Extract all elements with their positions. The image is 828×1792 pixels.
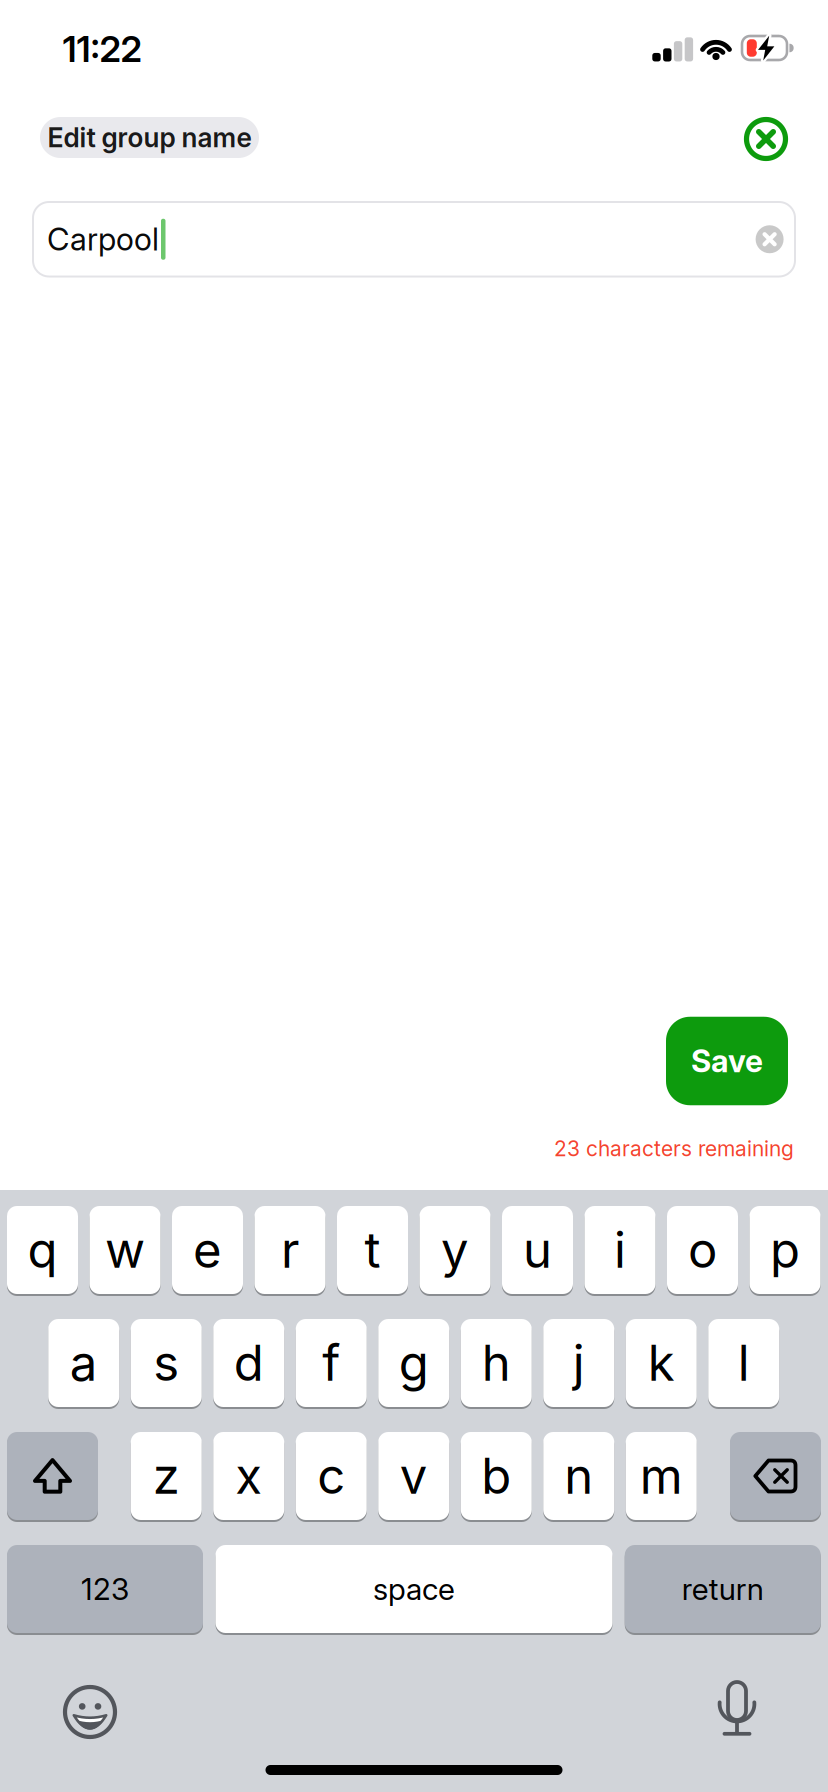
staticText: k	[648, 1333, 675, 1393]
staticText: j	[573, 1333, 585, 1393]
staticText: w	[105, 1220, 145, 1280]
button[interactable]: f	[296, 1319, 367, 1409]
button[interactable]: o	[667, 1206, 738, 1296]
button[interactable]: y	[419, 1206, 490, 1296]
staticText: d	[234, 1333, 264, 1393]
button[interactable]: b	[461, 1432, 532, 1522]
button[interactable]: 123	[7, 1545, 203, 1635]
button[interactable]: v	[378, 1432, 449, 1522]
button[interactable]: h	[461, 1319, 532, 1409]
button[interactable]: x	[213, 1432, 284, 1522]
button[interactable]: space	[215, 1545, 612, 1635]
staticText: m	[640, 1446, 683, 1506]
button[interactable]: u	[502, 1206, 573, 1296]
staticText: p	[770, 1220, 800, 1280]
staticText: f	[322, 1333, 340, 1393]
button[interactable]: w	[89, 1206, 160, 1296]
staticText: x	[235, 1446, 262, 1506]
button[interactable]: Shift	[7, 1432, 98, 1522]
staticText: o	[688, 1220, 717, 1280]
button[interactable]: n	[543, 1432, 614, 1522]
button[interactable]: m	[626, 1432, 697, 1522]
staticText: c	[317, 1446, 345, 1506]
staticText: h	[482, 1333, 511, 1393]
staticText: e	[193, 1220, 222, 1280]
staticText: t	[364, 1220, 380, 1280]
staticText: q	[27, 1220, 57, 1280]
button[interactable]: k	[626, 1319, 697, 1409]
button[interactable]: Group name	[33, 202, 795, 276]
staticText: 123	[81, 1571, 129, 1607]
button[interactable]: a	[48, 1319, 119, 1409]
staticText: return	[682, 1571, 764, 1607]
staticText: l	[738, 1333, 750, 1393]
staticText: a	[70, 1333, 98, 1393]
button[interactable]: return	[625, 1545, 821, 1635]
staticText: y	[441, 1220, 469, 1280]
staticText: b	[481, 1446, 511, 1506]
staticText: u	[523, 1220, 552, 1280]
button[interactable]: l	[708, 1319, 779, 1409]
staticText: g	[399, 1333, 429, 1393]
staticText: Edit group name	[47, 121, 251, 154]
button[interactable]: i	[584, 1206, 655, 1296]
button[interactable]: e	[172, 1206, 243, 1296]
button[interactable]: q	[7, 1206, 78, 1296]
button[interactable]: s	[131, 1319, 202, 1409]
staticText: 11:22	[62, 27, 141, 71]
staticText: 23 characters remaining	[554, 1136, 794, 1161]
button[interactable]: t	[337, 1206, 408, 1296]
staticText: s	[153, 1333, 179, 1393]
button[interactable]: g	[378, 1319, 449, 1409]
button[interactable]: r	[254, 1206, 325, 1296]
button[interactable]: c	[296, 1432, 367, 1522]
button[interactable]: Close	[744, 117, 788, 161]
staticText: r	[281, 1220, 299, 1280]
button[interactable]: Dictate	[717, 1682, 757, 1738]
staticText: space	[373, 1571, 455, 1607]
staticText: z	[153, 1446, 180, 1506]
staticText: v	[400, 1446, 428, 1506]
staticText: Save	[691, 1042, 763, 1080]
button[interactable]: p	[749, 1206, 820, 1296]
button[interactable]: Emoji	[64, 1686, 116, 1738]
staticText: n	[564, 1446, 593, 1506]
button[interactable]: j	[543, 1319, 614, 1409]
button[interactable]: z	[131, 1432, 202, 1522]
button[interactable]: Delete	[730, 1432, 821, 1522]
button[interactable]: d	[213, 1319, 284, 1409]
staticText: Carpool	[47, 220, 159, 258]
staticText: i	[614, 1220, 626, 1280]
button[interactable]: Save	[666, 1017, 788, 1105]
button[interactable]: Clear text	[756, 225, 784, 253]
